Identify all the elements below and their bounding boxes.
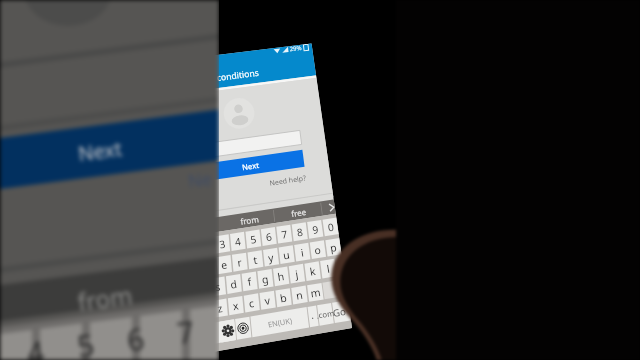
button[interactable] (0, 0, 640, 360)
